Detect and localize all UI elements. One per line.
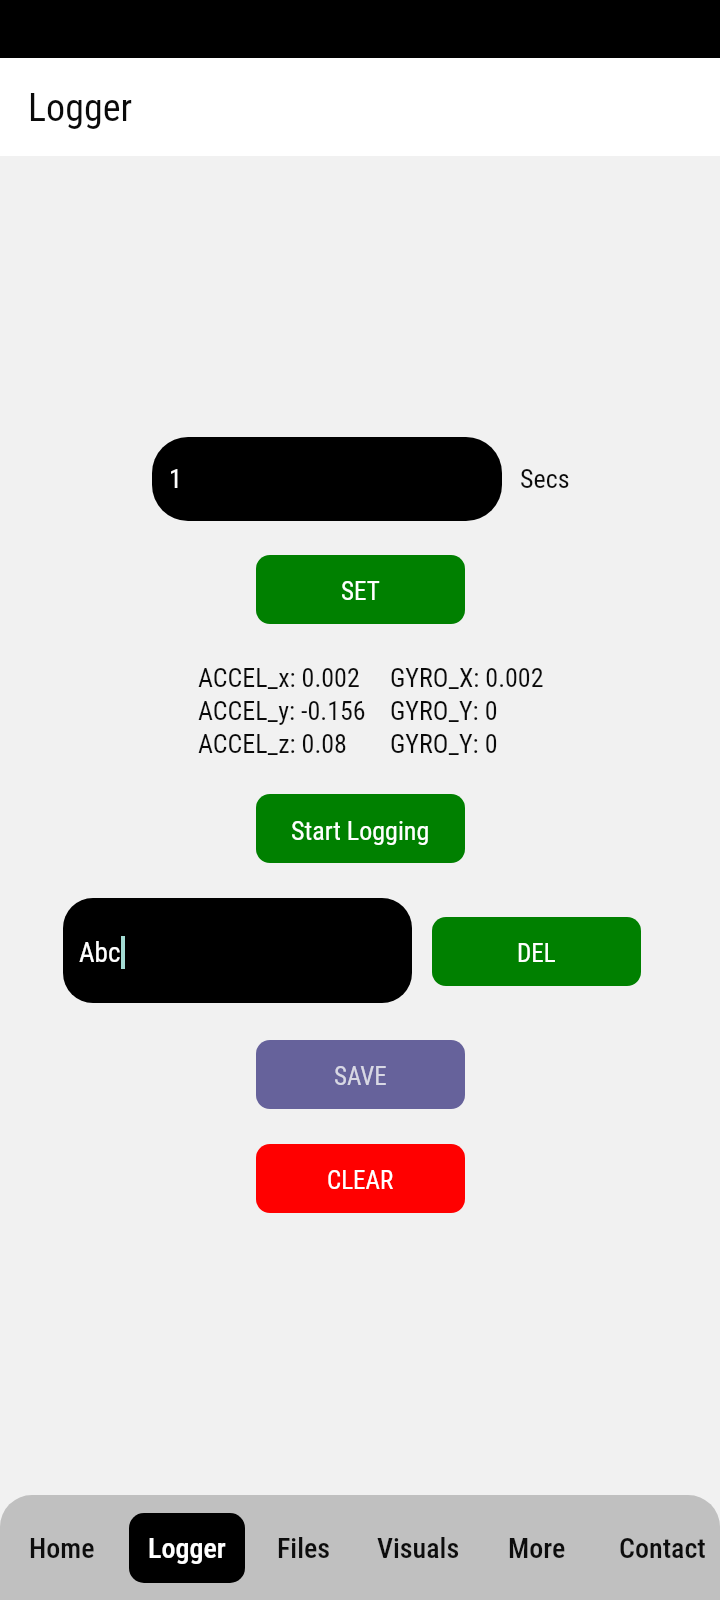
button[interactable]: Files xyxy=(254,1513,354,1583)
staticText: Contact xyxy=(619,1532,706,1565)
staticText: Secs xyxy=(520,464,570,494)
staticText: CLEAR xyxy=(327,1166,394,1195)
staticText: Files xyxy=(277,1532,331,1565)
staticText: SAVE xyxy=(334,1062,387,1091)
button[interactable]: Start Logging xyxy=(256,794,465,863)
button[interactable]: More xyxy=(487,1513,587,1583)
button[interactable]: DEL xyxy=(432,917,641,986)
staticText: Logger xyxy=(28,86,133,131)
staticText: 1 xyxy=(169,464,182,494)
button[interactable]: CLEAR xyxy=(256,1144,465,1213)
staticText: GYRO_X: 0.002 xyxy=(390,663,544,693)
button[interactable]: 1 xyxy=(152,437,502,521)
staticText: Abc xyxy=(79,937,121,969)
button[interactable]: SET xyxy=(256,555,465,624)
staticText: Logger xyxy=(148,1532,226,1565)
button[interactable]: Visuals xyxy=(368,1513,468,1583)
staticText: Home xyxy=(29,1532,95,1565)
staticText: ACCEL_y: -0.156 xyxy=(198,696,366,726)
staticText: GYRO_Y: 0 xyxy=(390,696,498,726)
staticText: ACCEL_z: 0.08 xyxy=(198,729,347,759)
staticText: More xyxy=(508,1532,566,1565)
staticText: GYRO_Y: 0 xyxy=(390,729,498,759)
button[interactable]: SAVE xyxy=(256,1040,465,1109)
staticText: SET xyxy=(341,577,380,606)
button[interactable]: Contact xyxy=(612,1513,712,1583)
button[interactable]: Abc xyxy=(63,898,412,1003)
staticText: ACCEL_x: 0.002 xyxy=(198,663,360,693)
staticText: DEL xyxy=(517,939,556,968)
staticText: Visuals xyxy=(377,1532,460,1565)
button[interactable]: Logger xyxy=(129,1513,245,1583)
staticText: Start Logging xyxy=(291,816,430,846)
button[interactable]: Home xyxy=(12,1513,112,1583)
